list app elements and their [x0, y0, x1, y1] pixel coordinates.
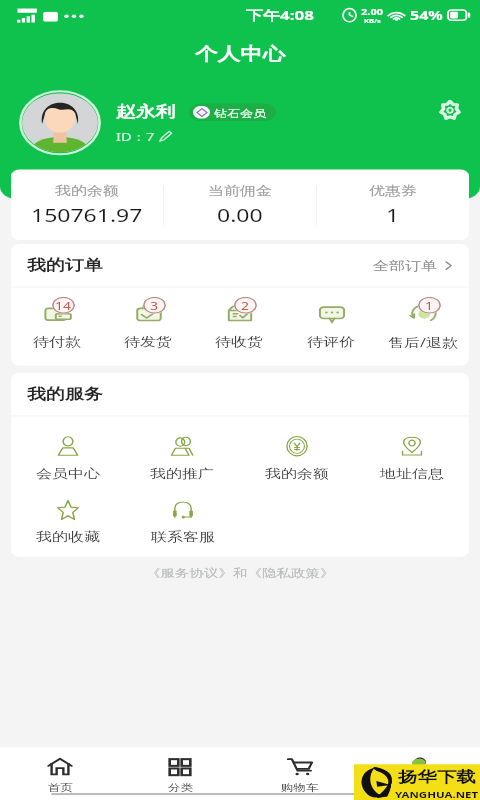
staticText: 我的服务 [27, 385, 103, 404]
staticText: 地址信息 [380, 466, 444, 481]
button[interactable]: 我的余额 [239, 436, 354, 481]
button[interactable]: 全部订单 [373, 252, 454, 280]
staticText: 钻石会员 [214, 106, 266, 119]
button[interactable]: 优惠券 [317, 169, 469, 240]
button[interactable]: 我的推广 [125, 436, 239, 481]
staticText: 会员中心 [36, 466, 100, 481]
staticText: 14 [55, 298, 72, 313]
staticText: 当前佣金 [208, 183, 272, 199]
button[interactable]: 首页 [0, 747, 120, 793]
staticText: 联系客服 [151, 530, 215, 545]
staticText: 150761.97 [31, 203, 143, 227]
button[interactable]: 购物车 [240, 747, 360, 793]
button[interactable]: 我的 [360, 747, 480, 793]
staticText: 待发货 [124, 334, 172, 349]
staticText: KB/s [364, 17, 381, 25]
button[interactable]: Settings [436, 96, 464, 124]
staticText: 分类 [168, 782, 193, 793]
button[interactable]: 2 [193, 287, 285, 366]
staticText: ID：7 [116, 128, 155, 144]
button[interactable]: 分类 [120, 747, 240, 793]
button[interactable]: 3 [102, 287, 193, 366]
staticText: 首页 [48, 782, 73, 793]
staticText: 下午4:08 [246, 6, 314, 24]
button[interactable]: 14 [11, 287, 102, 366]
staticText: 优惠券 [369, 183, 417, 199]
button[interactable]: 我的余额 [11, 169, 163, 240]
staticText: 我的推广 [150, 466, 214, 481]
staticText: 全部订单 [373, 258, 437, 273]
staticText: 我的订单 [27, 256, 103, 275]
staticText: 我的 [408, 782, 433, 793]
button[interactable]: 当前佣金 [164, 169, 316, 240]
staticText: 我的收藏 [36, 530, 100, 545]
button[interactable]: 地址信息 [354, 436, 469, 481]
staticText: 购物车 [281, 782, 319, 793]
staticText: 个人中心 [195, 43, 286, 64]
staticText: 扬华下载 [398, 767, 476, 787]
staticText: 待付款 [33, 334, 81, 349]
button[interactable]: 会员中心 [11, 436, 125, 481]
button[interactable]: 钻石会员 [189, 103, 276, 121]
staticText: 我的余额 [265, 466, 329, 481]
staticText: 1 [386, 203, 400, 227]
staticText: 待收货 [215, 334, 263, 349]
staticText: 2.00 [361, 5, 383, 17]
staticText: 3 [150, 298, 159, 313]
staticText: 54% [410, 7, 443, 24]
button[interactable]: 我的收藏 [11, 499, 125, 545]
staticText: 0.00 [217, 203, 263, 227]
staticText: 1 [425, 298, 434, 313]
button[interactable]: 联系客服 [125, 499, 240, 545]
staticText: 我的余额 [55, 183, 119, 199]
staticText: 售后/退款 [388, 334, 458, 351]
staticText: YANGHUA.NET [395, 788, 479, 800]
staticText: 待评价 [307, 334, 355, 349]
button[interactable]: 待评价 [285, 287, 377, 366]
staticText: 赵永利 [116, 102, 176, 122]
button[interactable]: 1 [377, 287, 469, 366]
staticText: 《服务协议》和《隐私政策》 [146, 566, 335, 580]
staticText: 2 [241, 298, 250, 313]
